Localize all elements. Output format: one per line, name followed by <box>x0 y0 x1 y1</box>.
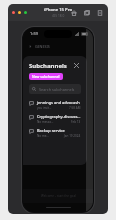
staticText: Backup service <box>37 128 65 133</box>
button[interactable]: #g-squeezing <box>23 52 93 63</box>
staticText: jennings and advocash <box>37 100 80 105</box>
staticText: Welcome – start the goal <box>41 194 76 198</box>
staticText: GENESIS <box>35 44 50 49</box>
button[interactable]: Screenshot <box>83 9 91 17</box>
button[interactable]: jennings and advocash <box>29 98 81 112</box>
button[interactable]: Cryptography-discussion <box>29 112 81 126</box>
staticText: Search subchannels <box>39 87 75 92</box>
button[interactable]: GENESIS <box>23 41 93 52</box>
staticText: New subchannel <box>32 74 60 79</box>
staticText: you invited the chat as a one-of-2… <box>37 106 53 110</box>
staticText: Jan 19 2024 <box>64 134 81 138</box>
button[interactable]: Record <box>96 9 104 17</box>
staticText: Cryptography-discussion <box>37 114 81 119</box>
button[interactable]: New subchannel <box>29 73 63 80</box>
staticText: Feb 13 <box>71 120 81 124</box>
staticText: 1:59 <box>30 31 38 36</box>
staticText: iPhone 15 Pro <box>44 7 72 13</box>
staticText: 7:58 AM <box>69 106 81 110</box>
button[interactable]: Backup service <box>29 126 81 140</box>
staticText: Subchannels <box>29 62 67 70</box>
button[interactable]: Close <box>72 61 81 70</box>
button[interactable]: Home <box>70 9 78 17</box>
staticText: iOS 18.0 <box>52 14 65 18</box>
button[interactable]: Search subchannels <box>29 84 81 94</box>
staticText: No messages <box>37 134 50 138</box>
staticText: No messages <box>37 120 54 124</box>
staticText: #g-squeezing <box>35 55 59 60</box>
